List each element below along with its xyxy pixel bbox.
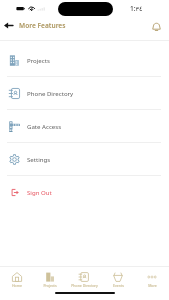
- button[interactable]: Phone Directory: [0, 77, 169, 109]
- button[interactable]: Projects: [0, 44, 169, 76]
- button[interactable]: More: [135, 267, 169, 290]
- button[interactable]: Gate Access: [0, 110, 169, 142]
- staticText: Events: [113, 283, 124, 288]
- staticText: Projects: [43, 283, 57, 288]
- staticText: 1:٣٤: [130, 4, 143, 13]
- button[interactable]: Settings: [0, 143, 169, 175]
- staticText: Phone Directory: [27, 89, 74, 97]
- staticText: Sign Out: [27, 188, 52, 196]
- button[interactable]: Events: [101, 267, 135, 290]
- staticText: Phone Directory: [71, 283, 98, 288]
- staticText: Gate Access: [27, 122, 62, 130]
- button[interactable]: Home: [0, 267, 33, 290]
- button[interactable]: Sign Out: [0, 176, 169, 208]
- button[interactable]: Phone Directory: [67, 267, 101, 290]
- staticText: Home: [12, 283, 22, 288]
- button[interactable]: Projects: [33, 267, 67, 290]
- button[interactable]: Back: [1, 18, 16, 33]
- staticText: Settings: [27, 155, 51, 163]
- staticText: More: [148, 283, 157, 288]
- button[interactable]: Notifications: [149, 19, 163, 33]
- staticText: Projects: [27, 56, 50, 64]
- staticText: More Features: [19, 21, 66, 30]
